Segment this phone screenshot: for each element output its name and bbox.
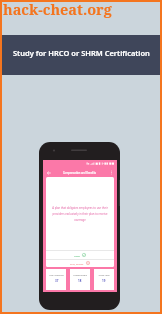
button[interactable]: Back: [43, 167, 117, 177]
button[interactable]: Trying Again: [94, 269, 114, 290]
button[interactable]: More options: [108, 169, 115, 176]
staticText: HMO: [74, 254, 80, 257]
staticText: Compensation and Benefits: [63, 171, 97, 174]
button[interactable]: Answered Right: [70, 269, 90, 290]
staticText: Study for HRCO or SHRM Certification: [13, 48, 150, 58]
staticText: Total Attempted: [49, 274, 64, 277]
button[interactable]: Study for HRCO or SHRM Certification: [0, 35, 162, 75]
button[interactable]: Back: [45, 169, 52, 176]
staticText: 19: [102, 279, 106, 283]
staticText: PPO, accept: [70, 262, 84, 265]
button[interactable]: HMO: [46, 250, 114, 259]
staticText: Answered Right: [73, 274, 87, 277]
button[interactable]: PPO, accept: [46, 259, 114, 267]
staticText: A plan that obligates employees to use t…: [52, 206, 108, 222]
staticText: 18: [78, 279, 82, 283]
staticText: hack-cheat.org: [3, 0, 112, 19]
button[interactable]: Total Attempted: [46, 269, 66, 290]
staticText: Trying Again: [98, 274, 110, 277]
staticText: 37: [55, 279, 59, 283]
